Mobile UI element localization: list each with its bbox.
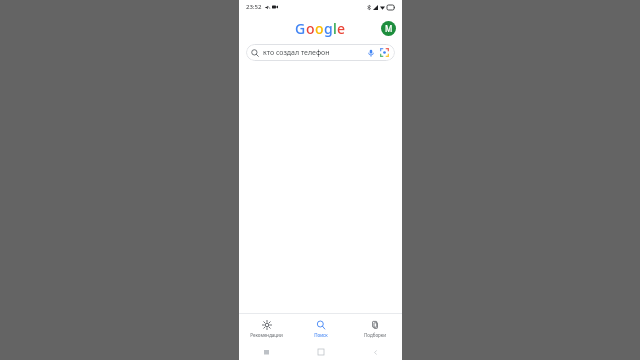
button[interactable]: Home [294,344,348,360]
staticText: l [333,19,337,38]
button[interactable]: Поиск [294,314,348,344]
button[interactable]: Подборки [348,314,402,344]
staticText: e [337,19,346,38]
button[interactable]: Recents [239,344,294,360]
staticText: кто создал телефон [263,48,365,58]
staticText: Подборки [364,332,386,338]
button[interactable]: кто создал телефон [246,44,395,61]
button[interactable]: Рекомендации [239,314,294,344]
staticText: 23:52 [246,3,262,11]
button[interactable]: Google Lens [379,47,390,58]
staticText: g [324,19,333,38]
staticText: G [295,19,306,38]
staticText: o [315,19,324,38]
staticText: o [306,19,315,38]
staticText: M [385,23,393,34]
button[interactable]: Account [381,21,396,36]
staticText: Рекомендации [250,332,283,338]
button[interactable]: Voice search [365,47,376,58]
staticText: Поиск [314,332,328,338]
